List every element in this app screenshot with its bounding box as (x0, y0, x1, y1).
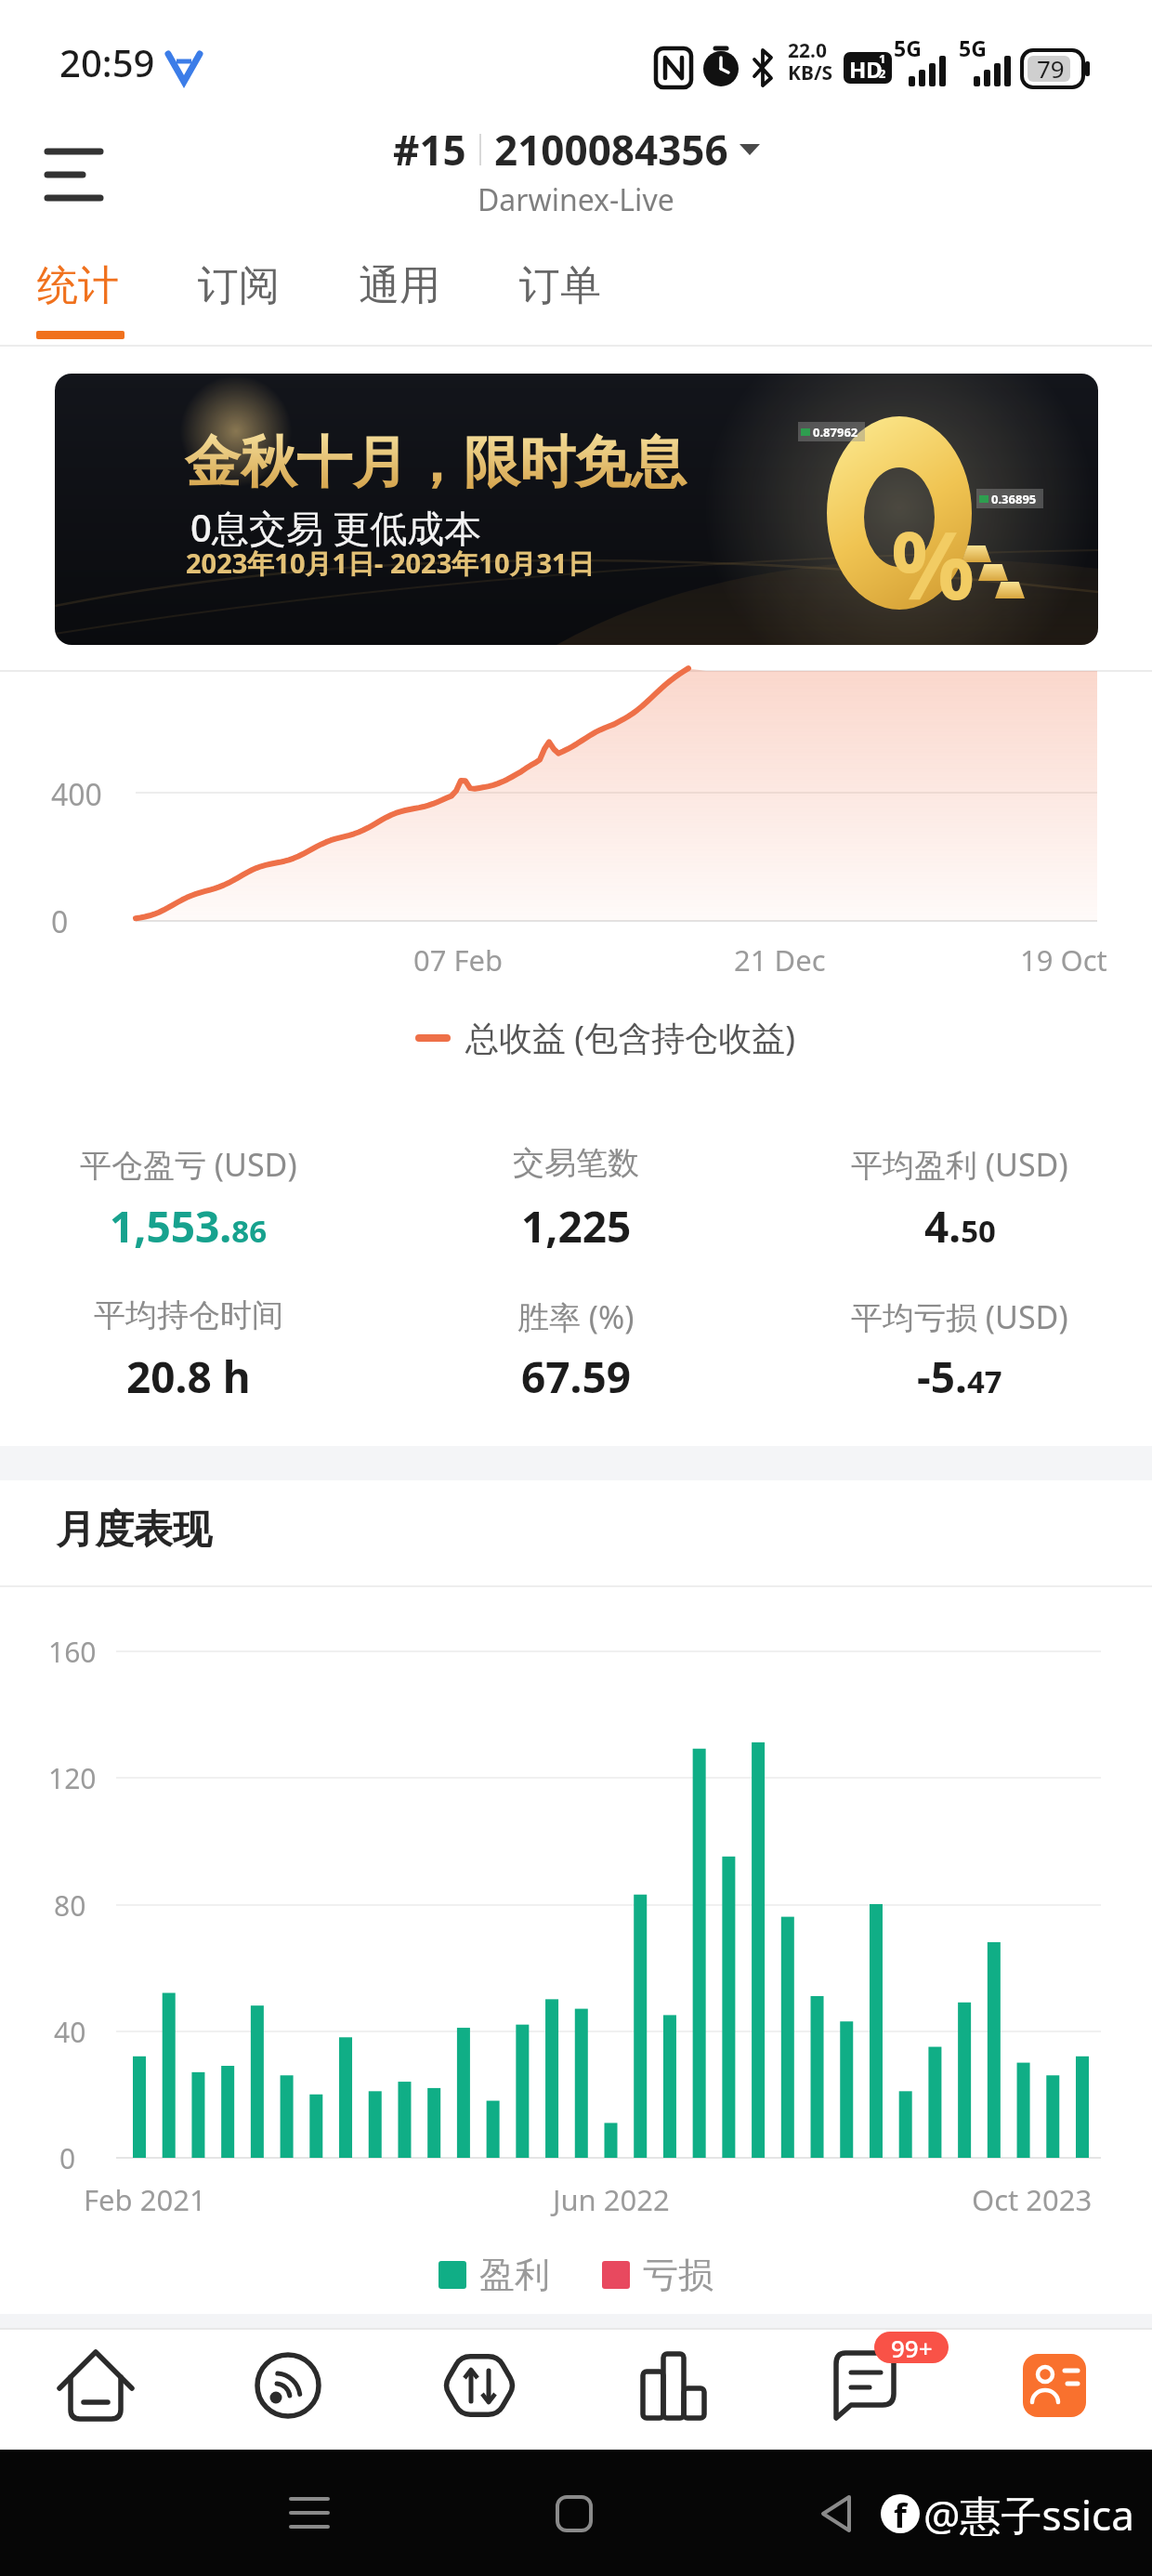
staticText: 盈利 (479, 2253, 550, 2297)
button[interactable] (576, 2330, 767, 2450)
staticText: 21 Dec (734, 940, 826, 979)
staticText: 平均亏损 (USD) (851, 1295, 1068, 1338)
button[interactable] (19, 246, 139, 339)
staticText: 5G (959, 33, 987, 62)
staticText: 订阅 (198, 260, 280, 311)
button[interactable] (0, 2330, 191, 2450)
staticText: 胜率 (%) (517, 1295, 635, 1338)
staticText: 0.87962 (813, 424, 858, 440)
staticText: 2100084356 (494, 122, 728, 177)
staticText: 金秋十月，限时免息 (185, 427, 687, 498)
staticText: 07 Feb (413, 940, 504, 979)
staticText: 5G (894, 33, 922, 62)
staticText: 80 (54, 1886, 86, 1925)
staticText: @惠子ssica (923, 2487, 1134, 2543)
staticText: 20:59 (59, 37, 155, 87)
staticText: 400 (51, 774, 102, 815)
staticText: 40 (54, 2013, 86, 2051)
staticText: 月度表现 (56, 1505, 212, 1555)
staticText: Feb 2021 (84, 2180, 206, 2219)
staticText: 平仓盈亏 (USD) (80, 1143, 297, 1186)
staticText: 79 (1037, 52, 1065, 85)
staticText: 67.59 (521, 1347, 632, 1406)
staticText: 1,225 (521, 1197, 632, 1255)
staticText: 1 (879, 50, 886, 67)
staticText: #15 (393, 122, 466, 177)
button[interactable] (192, 2330, 384, 2450)
button[interactable] (342, 246, 463, 339)
button[interactable] (503, 246, 623, 339)
button[interactable]: 金秋十月，限时免息 (55, 374, 1098, 645)
staticText: KB/S (788, 59, 833, 86)
button[interactable] (384, 2330, 575, 2450)
staticText: 19 Oct (1020, 940, 1107, 979)
staticText: 1,553.86 (110, 1197, 268, 1255)
staticText: 0 (59, 2139, 76, 2177)
staticText: 统计 (37, 260, 119, 311)
staticText: 99+ (891, 2332, 933, 2363)
staticText: 4.50 (924, 1197, 996, 1255)
staticText: Jun 2022 (553, 2180, 670, 2219)
button[interactable] (37, 135, 121, 218)
staticText: 平均持仓时间 (94, 1295, 283, 1335)
staticText: 0 (51, 901, 69, 942)
staticText: 亏损 (643, 2253, 713, 2297)
staticText: Oct 2023 (972, 2180, 1093, 2219)
staticText: 通用 (359, 260, 440, 311)
button[interactable] (767, 2330, 959, 2450)
staticText: 22.0 (788, 37, 827, 64)
staticText: 120 (48, 1759, 97, 1797)
staticText: HD (849, 54, 883, 85)
staticText: 平均盈利 (USD) (851, 1143, 1068, 1186)
staticText: 160 (48, 1633, 97, 1671)
button[interactable] (181, 246, 302, 339)
staticText: Darwinex-Live (478, 179, 674, 220)
staticText: 2 (879, 65, 886, 82)
staticText: 0.36895 (991, 491, 1037, 507)
staticText: 总收益 (包含持仓收益) (465, 1015, 795, 1060)
staticText: 订单 (519, 260, 601, 311)
staticText: 0息交易 更低成本 (190, 502, 482, 553)
staticText: f (894, 2492, 907, 2538)
staticText: -5.47 (917, 1347, 1002, 1406)
staticText: 20.8 h (126, 1347, 251, 1406)
staticText: 2023年10月1日- 2023年10月31日 (186, 545, 595, 582)
button[interactable] (960, 2330, 1151, 2450)
staticText: 交易笔数 (513, 1143, 639, 1183)
staticText: % (891, 500, 975, 626)
